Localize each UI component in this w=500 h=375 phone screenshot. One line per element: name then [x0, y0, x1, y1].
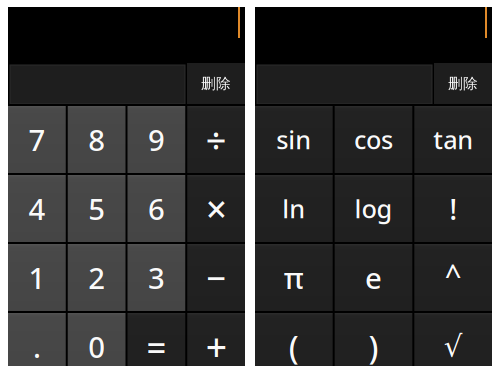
button[interactable]: ) — [335, 313, 412, 375]
button[interactable]: 2 — [68, 244, 126, 311]
button[interactable]: ( — [255, 313, 333, 375]
staticText: × — [206, 184, 227, 233]
staticText: 3 — [148, 258, 165, 297]
button[interactable]: . — [8, 313, 66, 375]
staticText: 9 — [148, 120, 165, 159]
button[interactable]: − — [187, 244, 245, 311]
staticText: ÷ — [206, 116, 227, 163]
staticText: sin — [276, 123, 311, 156]
button[interactable]: ln — [255, 175, 333, 242]
staticText: cos — [354, 123, 393, 156]
button[interactable]: 0 — [68, 313, 126, 375]
button[interactable]: π — [255, 244, 333, 311]
button[interactable]: 8 — [68, 106, 126, 173]
staticText: = — [146, 323, 166, 369]
button[interactable]: √ — [414, 313, 492, 375]
button[interactable]: ! — [414, 175, 492, 242]
button[interactable]: log — [335, 175, 412, 242]
staticText: ^ — [445, 255, 462, 294]
button[interactable]: = — [127, 313, 185, 375]
staticText: ) — [368, 325, 378, 368]
button[interactable]: sin — [255, 106, 333, 173]
staticText: 7 — [28, 120, 45, 159]
button[interactable]: 3 — [127, 244, 185, 311]
button[interactable]: ^ — [414, 244, 492, 311]
staticText: log — [354, 192, 392, 225]
button[interactable]: 删除 — [187, 63, 245, 104]
staticText: e — [365, 258, 382, 297]
staticText: π — [284, 258, 304, 297]
staticText: 1 — [28, 258, 45, 297]
staticText: 6 — [148, 189, 165, 228]
staticText: + — [206, 322, 227, 371]
button[interactable]: + — [187, 313, 245, 375]
staticText: . — [33, 327, 41, 366]
staticText: − — [206, 254, 226, 300]
staticText: 5 — [88, 189, 105, 228]
button[interactable]: 5 — [68, 175, 126, 242]
button[interactable]: cos — [335, 106, 412, 173]
staticText: ! — [449, 189, 457, 228]
staticText: ( — [289, 325, 299, 368]
button[interactable]: ÷ — [187, 106, 245, 173]
button[interactable]: 1 — [8, 244, 66, 311]
button[interactable]: e — [335, 244, 412, 311]
staticText: 0 — [88, 327, 105, 366]
button[interactable]: 4 — [8, 175, 66, 242]
button[interactable]: 9 — [127, 106, 185, 173]
staticText: √ — [444, 330, 463, 363]
staticText: 8 — [88, 120, 105, 159]
button[interactable]: 7 — [8, 106, 66, 173]
button[interactable]: 6 — [127, 175, 185, 242]
button[interactable]: × — [187, 175, 245, 242]
staticText: tan — [433, 123, 473, 156]
staticText: 删除 — [448, 74, 478, 92]
staticText: 2 — [88, 258, 105, 297]
staticText: 删除 — [201, 74, 231, 92]
button[interactable]: 删除 — [434, 63, 492, 104]
button[interactable]: tan — [414, 106, 492, 173]
staticText: ln — [282, 192, 305, 225]
staticText: 4 — [28, 189, 45, 228]
